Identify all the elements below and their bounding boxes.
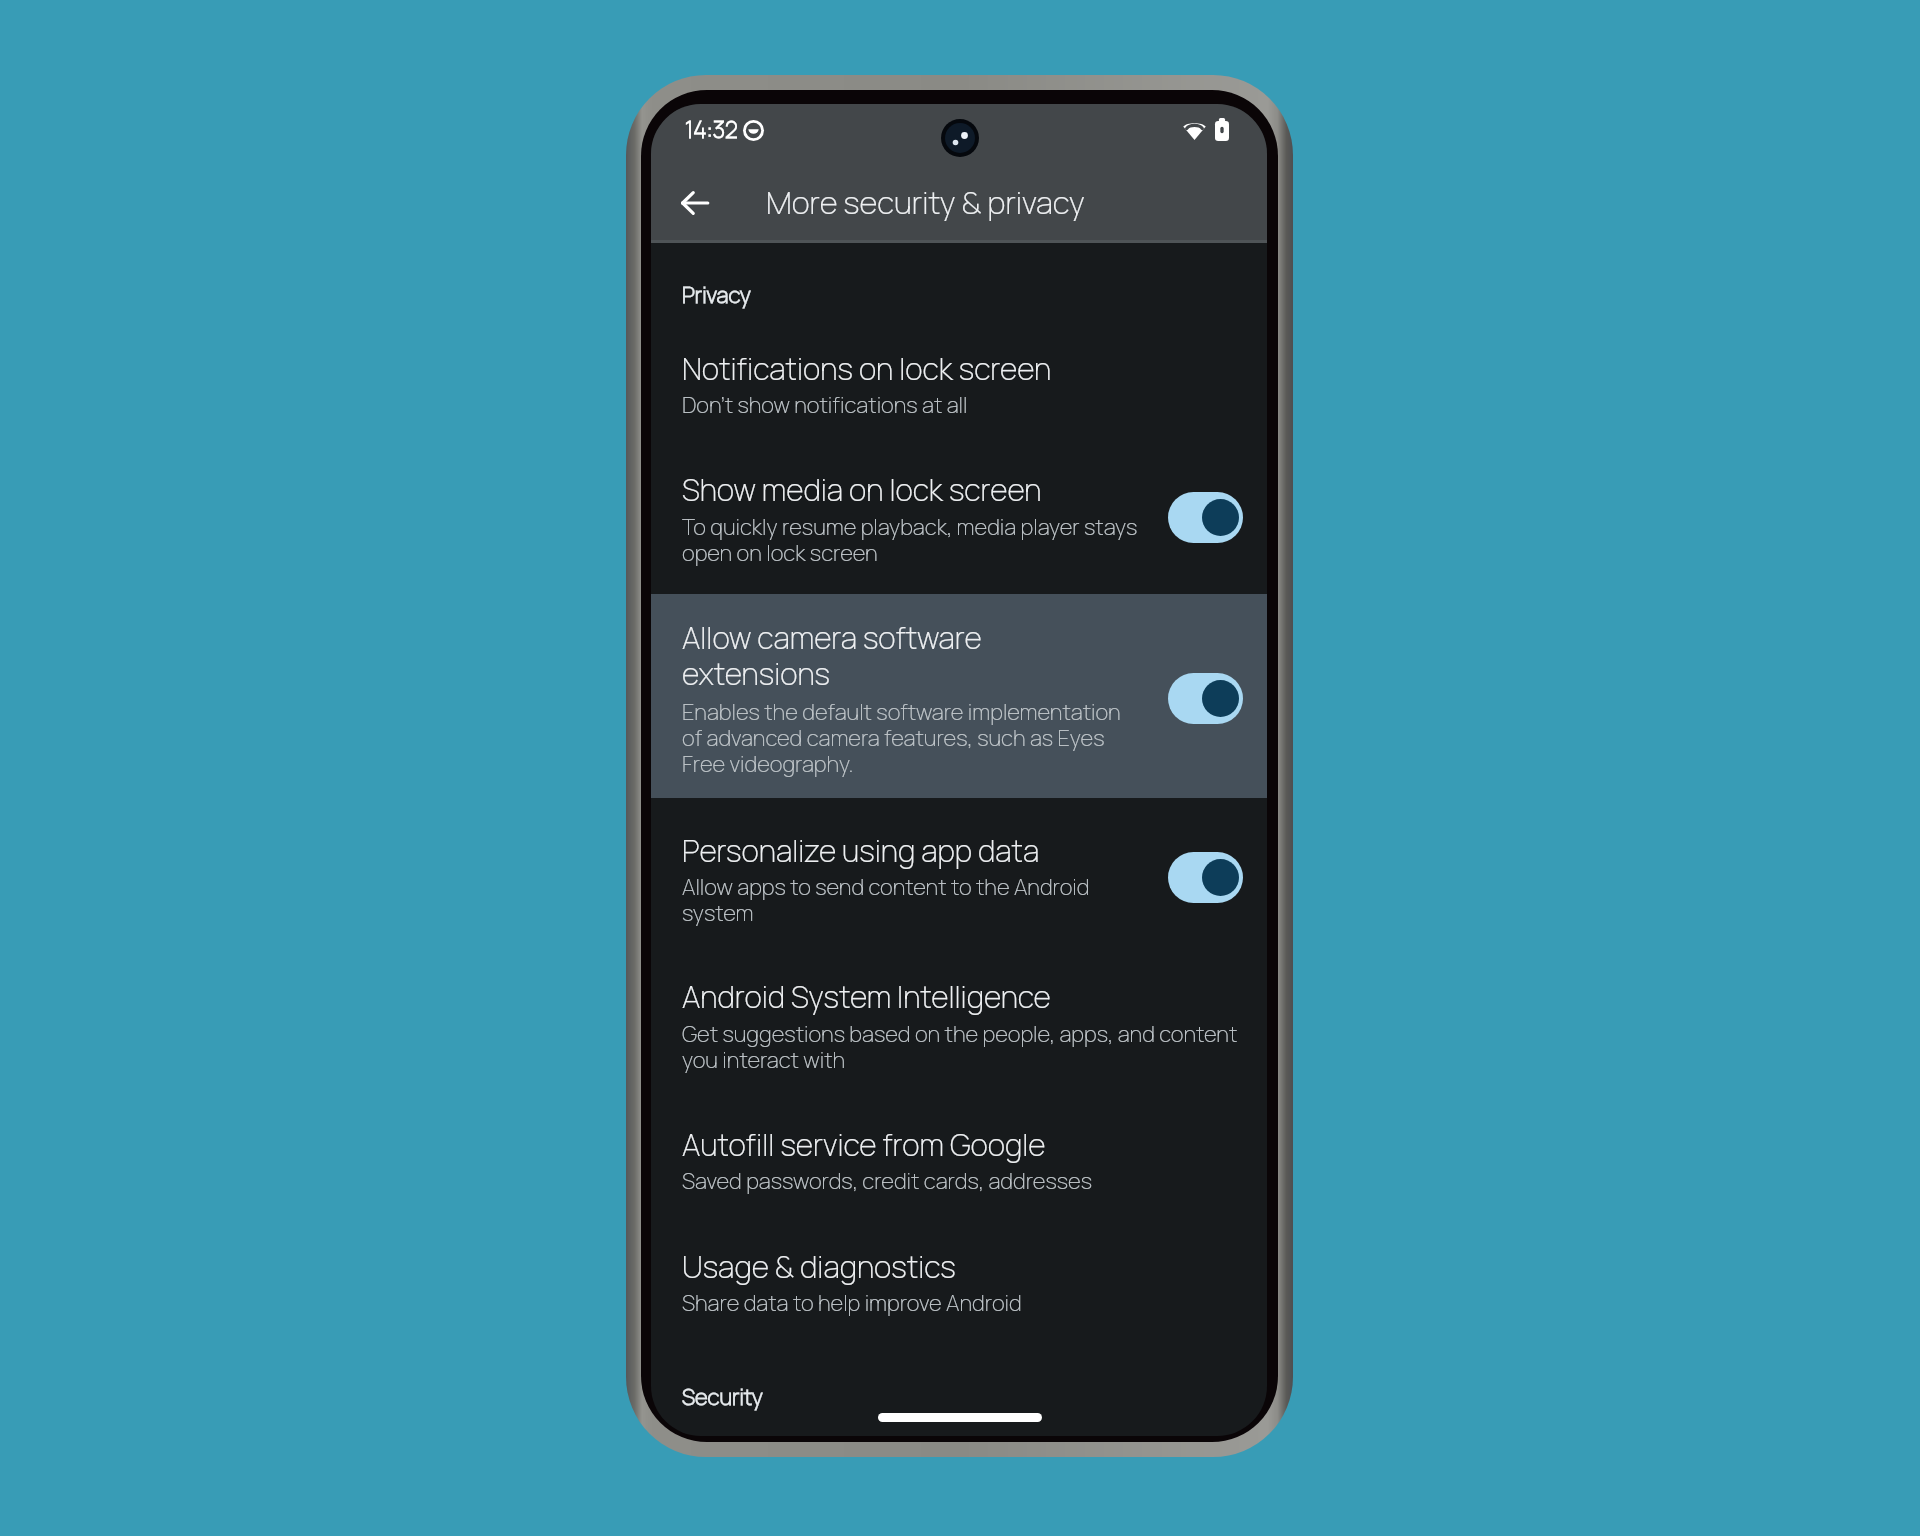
staticText: 14:32 (685, 116, 738, 144)
staticText: Personalize using app data (682, 834, 1040, 870)
button[interactable]: Toggle Personalize using app data (1168, 852, 1243, 903)
button[interactable]: Toggle Allow camera software extensions (1168, 673, 1243, 724)
staticText: Autofill service from Google (682, 1128, 1046, 1164)
staticText: Show media on lock screen (682, 473, 1042, 509)
staticText: Usage & diagnostics (682, 1250, 956, 1286)
button[interactable] (651, 968, 1267, 1072)
staticText: Android System Intelligence (682, 980, 1051, 1016)
staticText: Privacy (682, 283, 751, 309)
staticText: Get suggestions based on the people, app… (682, 1022, 1242, 1074)
button[interactable] (651, 340, 1267, 443)
staticText: Allow camera software extensions (682, 621, 1012, 693)
button[interactable] (651, 594, 1267, 798)
button[interactable] (651, 609, 1267, 750)
staticText: To quickly resume playback, media player… (682, 515, 1140, 567)
button[interactable] (651, 822, 1267, 925)
staticText: Security (682, 1385, 763, 1411)
staticText: Share data to help improve Android (682, 1291, 1242, 1317)
button[interactable] (651, 461, 1267, 565)
staticText: More security & privacy (766, 186, 1085, 222)
button[interactable]: Toggle Show media on lock screen (1168, 492, 1243, 543)
staticText: Allow apps to send content to the Androi… (682, 875, 1140, 927)
staticText: Saved passwords, credit cards, addresses (682, 1169, 1242, 1195)
staticText: Enables the default software implementat… (682, 700, 1140, 778)
button[interactable] (651, 1116, 1267, 1219)
button[interactable] (651, 1238, 1267, 1341)
button[interactable]: Back (667, 175, 723, 231)
staticText: Don’t show notifications at all (682, 393, 1242, 419)
staticText: Notifications on lock screen (682, 352, 1052, 388)
